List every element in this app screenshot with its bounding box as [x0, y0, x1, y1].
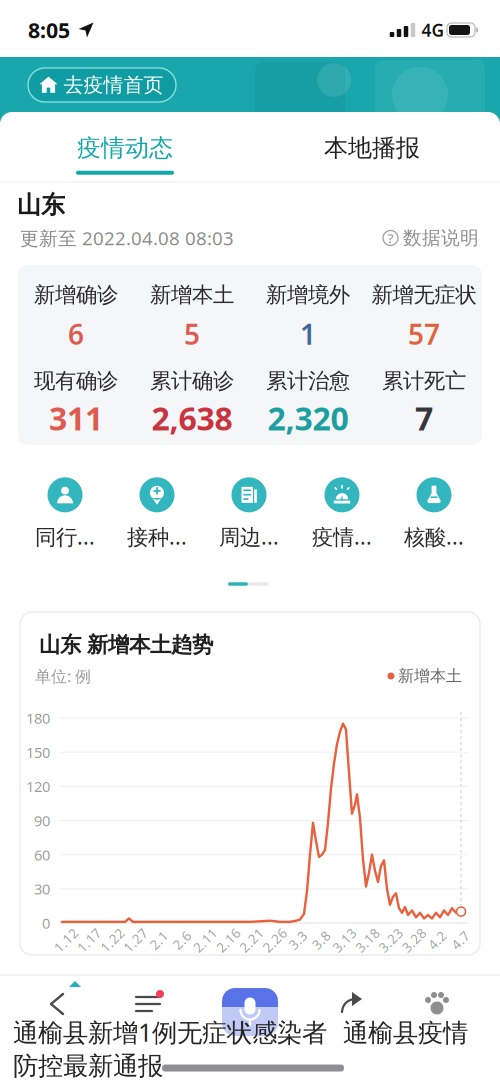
staticText: 1.12	[52, 931, 80, 949]
staticText: 通榆县新增1例无症状感染者 通榆县疫情	[13, 1015, 468, 1049]
staticText: 疫情...	[312, 522, 372, 551]
button[interactable]: 去疫情首页	[28, 68, 176, 102]
button[interactable]: 本地播报	[324, 133, 420, 163]
staticText: 2,638	[151, 397, 232, 439]
staticText: 0	[42, 913, 50, 933]
button[interactable]: Baidu home	[423, 990, 451, 1016]
staticText: 6	[68, 315, 84, 353]
staticText: 3.13	[330, 931, 358, 949]
button[interactable]: 周边...	[219, 477, 279, 551]
button[interactable]: 疫情动态	[76, 133, 174, 175]
staticText: 2.21	[238, 931, 266, 949]
staticText: 2.16	[214, 931, 242, 949]
staticText: 3.28	[400, 931, 428, 949]
staticText: 新增境外	[266, 282, 350, 308]
button[interactable]: Voice search	[222, 988, 278, 1036]
staticText: 4.7	[450, 931, 470, 949]
staticText: 山东	[17, 190, 65, 220]
staticText: 去疫情首页	[63, 73, 163, 97]
staticText: 新增无症状	[371, 282, 476, 308]
staticText: 2.26	[261, 931, 289, 949]
button[interactable]: 同行...	[35, 477, 95, 551]
staticText: 山东 新增本土趋势	[39, 632, 213, 658]
button[interactable]: 接种...	[127, 477, 187, 551]
staticText: 3.18	[354, 931, 382, 949]
staticText: 1.17	[75, 931, 103, 949]
staticText: 新增本土	[398, 666, 462, 686]
staticText: 更新至 2022.04.08 08:03	[20, 226, 234, 250]
staticText: 60	[34, 845, 50, 864]
staticText: 5	[184, 315, 200, 353]
staticText: 接种...	[127, 522, 187, 551]
staticText: 3.8	[311, 931, 331, 949]
staticText: 同行...	[35, 522, 95, 551]
button[interactable]: Share	[338, 990, 366, 1018]
staticText: 累计治愈	[266, 368, 350, 394]
staticText: 3.23	[377, 931, 405, 949]
staticText: 30	[34, 879, 50, 899]
staticText: 1.27	[122, 931, 150, 949]
staticText: 现有确诊	[34, 368, 118, 394]
staticText: ?	[387, 229, 393, 247]
staticText: 180	[26, 708, 50, 728]
staticText: 4.2	[427, 931, 447, 949]
staticText: 2.6	[172, 931, 192, 949]
button[interactable]: Back	[43, 990, 71, 1018]
staticText: 3.3	[288, 931, 308, 949]
staticText: 7	[415, 397, 433, 439]
staticText: 周边...	[219, 522, 279, 551]
button[interactable]: 核酸...	[404, 477, 464, 551]
button[interactable]: Menu	[134, 990, 162, 1018]
staticText: 57	[408, 315, 440, 353]
staticText: 累计死亡	[382, 368, 466, 394]
staticText: 311	[49, 397, 103, 439]
staticText: 防控最新通报	[13, 1050, 163, 1081]
button[interactable]: 疫情...	[312, 477, 372, 551]
button[interactable]: ?	[383, 226, 479, 249]
staticText: 8:05	[28, 16, 70, 44]
staticText: 核酸...	[404, 522, 464, 551]
staticText: 2.11	[191, 931, 219, 949]
staticText: 新增确诊	[34, 282, 118, 308]
staticText: 90	[34, 811, 50, 830]
staticText: 数据说明	[403, 226, 479, 249]
staticText: 疫情动态	[77, 133, 173, 163]
staticText: 新增本土	[150, 282, 234, 308]
staticText: 2.1	[149, 931, 169, 949]
staticText: 1	[300, 315, 316, 353]
staticText: 本地播报	[324, 133, 420, 163]
staticText: 150	[26, 742, 50, 762]
staticText: 120	[26, 777, 50, 796]
staticText: 1.22	[98, 931, 126, 949]
staticText: 2,320	[267, 397, 348, 439]
staticText: 累计确诊	[150, 368, 234, 394]
staticText: 单位: 例	[35, 665, 91, 687]
staticText: 4G	[421, 18, 444, 41]
